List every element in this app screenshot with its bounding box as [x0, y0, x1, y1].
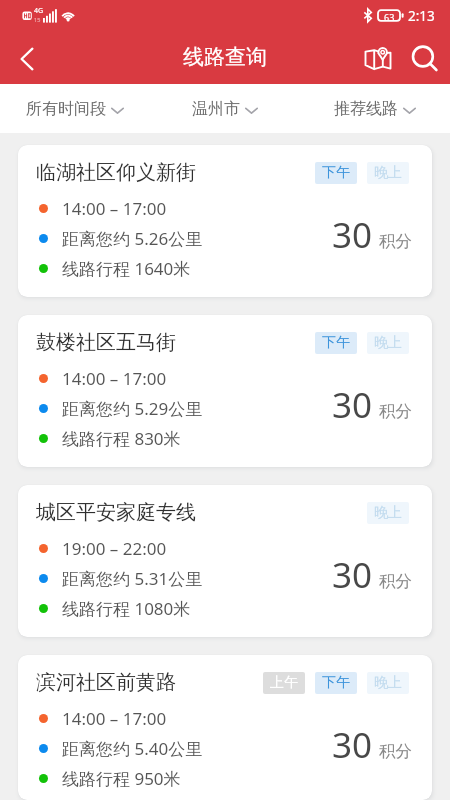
button[interactable]: Search — [401, 30, 445, 84]
button[interactable]: 所有时间段 — [0, 84, 150, 133]
button[interactable]: Map — [356, 30, 400, 84]
staticText: 2:13 — [408, 7, 435, 25]
staticText: 线路行程 830米 — [62, 427, 181, 450]
staticText: 线路查询 — [183, 44, 267, 70]
staticText: 晚上 — [374, 164, 402, 182]
button[interactable]: 下午 — [315, 672, 357, 694]
staticText: 距离您约 5.40公里 — [62, 737, 203, 760]
staticText: 临湖社区仰义新街 — [36, 160, 196, 185]
staticText: 30 — [332, 721, 373, 769]
button[interactable]: 温州市 — [150, 84, 300, 133]
button[interactable]: 晚上 — [367, 162, 409, 184]
staticText: 晚上 — [374, 674, 402, 692]
button[interactable]: 鼓楼社区五马街 — [18, 315, 432, 467]
button[interactable]: 晚上 — [367, 672, 409, 694]
staticText: 19:00 – 22:00 — [62, 537, 167, 560]
staticText: 上午 — [270, 674, 298, 692]
staticText: 30 — [332, 211, 373, 259]
staticText: 积分 — [379, 231, 412, 252]
staticText: 滨河社区前黄路 — [36, 670, 176, 695]
staticText: 所有时间段 — [26, 99, 106, 119]
staticText: 线路行程 1640米 — [62, 257, 191, 280]
staticText: 城区平安家庭专线 — [36, 500, 196, 525]
button[interactable]: 晚上 — [367, 502, 409, 524]
staticText: 15 — [34, 16, 41, 23]
staticText: 积分 — [379, 741, 412, 762]
staticText: 温州市 — [192, 99, 240, 119]
staticText: 30 — [332, 381, 373, 429]
button[interactable]: 下午 — [315, 162, 357, 184]
button[interactable]: 临湖社区仰义新街 — [18, 145, 432, 297]
staticText: 鼓楼社区五马街 — [36, 330, 176, 355]
staticText: 下午 — [322, 334, 350, 352]
button[interactable]: 晚上 — [367, 332, 409, 354]
staticText: 30 — [332, 551, 373, 599]
button[interactable]: 城区平安家庭专线 — [18, 485, 432, 637]
button[interactable]: 下午 — [315, 332, 357, 354]
staticText: 距离您约 5.26公里 — [62, 227, 203, 250]
staticText: 63 — [384, 11, 395, 23]
staticText: 晚上 — [374, 504, 402, 522]
staticText: 晚上 — [374, 334, 402, 352]
staticText: 14:00 – 17:00 — [62, 197, 167, 220]
staticText: 下午 — [322, 674, 350, 692]
staticText: 线路行程 1080米 — [62, 597, 191, 620]
staticText: 推荐线路 — [334, 99, 398, 119]
button[interactable]: Back — [5, 37, 49, 81]
staticText: 线路行程 950米 — [62, 767, 181, 790]
staticText: 14:00 – 17:00 — [62, 367, 167, 390]
staticText: 4G — [34, 6, 44, 16]
button[interactable]: 推荐线路 — [300, 84, 450, 133]
staticText: 距离您约 5.29公里 — [62, 397, 203, 420]
staticText: 积分 — [379, 571, 412, 592]
button[interactable]: 上午 — [263, 672, 305, 694]
staticText: 14:00 – 17:00 — [62, 707, 167, 730]
button[interactable]: 滨河社区前黄路 — [18, 655, 432, 800]
staticText: 积分 — [379, 401, 412, 422]
staticText: 距离您约 5.31公里 — [62, 567, 203, 590]
staticText: 下午 — [322, 164, 350, 182]
